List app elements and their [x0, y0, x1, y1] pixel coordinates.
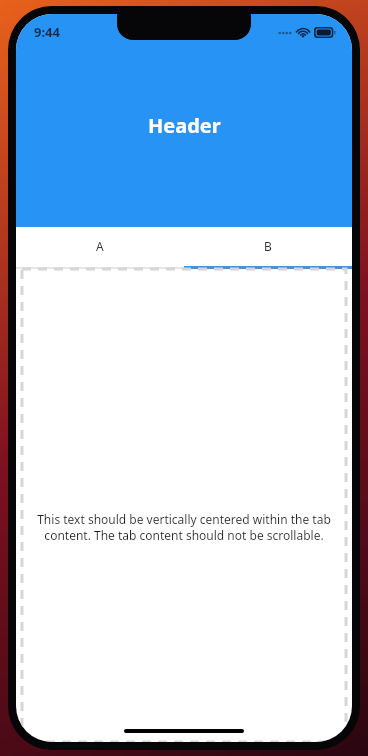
staticText: B	[264, 238, 272, 254]
staticText: This text should be vertically centered …	[34, 511, 334, 544]
staticText: Header	[148, 112, 221, 139]
staticText: A	[96, 238, 104, 254]
staticText: 9:44	[34, 23, 60, 41]
button[interactable]: B	[184, 227, 352, 269]
button[interactable]: A	[16, 227, 184, 269]
